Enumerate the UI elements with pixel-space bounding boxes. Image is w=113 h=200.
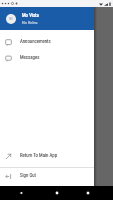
staticText: MV (9, 17, 13, 21)
staticText: No Roles (22, 20, 38, 25)
staticText: Announcements (20, 39, 51, 45)
button[interactable]: Back (18, 190, 24, 196)
staticText: Mo Vista (22, 13, 39, 19)
staticText: Return To Main App (20, 153, 58, 159)
button[interactable]: Home (54, 190, 60, 196)
button[interactable]: Return To Main App (0, 148, 94, 164)
button[interactable]: Sign Out (0, 168, 94, 184)
button[interactable]: Recents (85, 190, 91, 196)
staticText: Sign Out (20, 173, 36, 179)
button[interactable]: MV (0, 7, 94, 30)
button[interactable]: Messages (0, 50, 94, 66)
button[interactable]: Announcements (0, 34, 94, 50)
staticText: Messages (20, 55, 40, 61)
